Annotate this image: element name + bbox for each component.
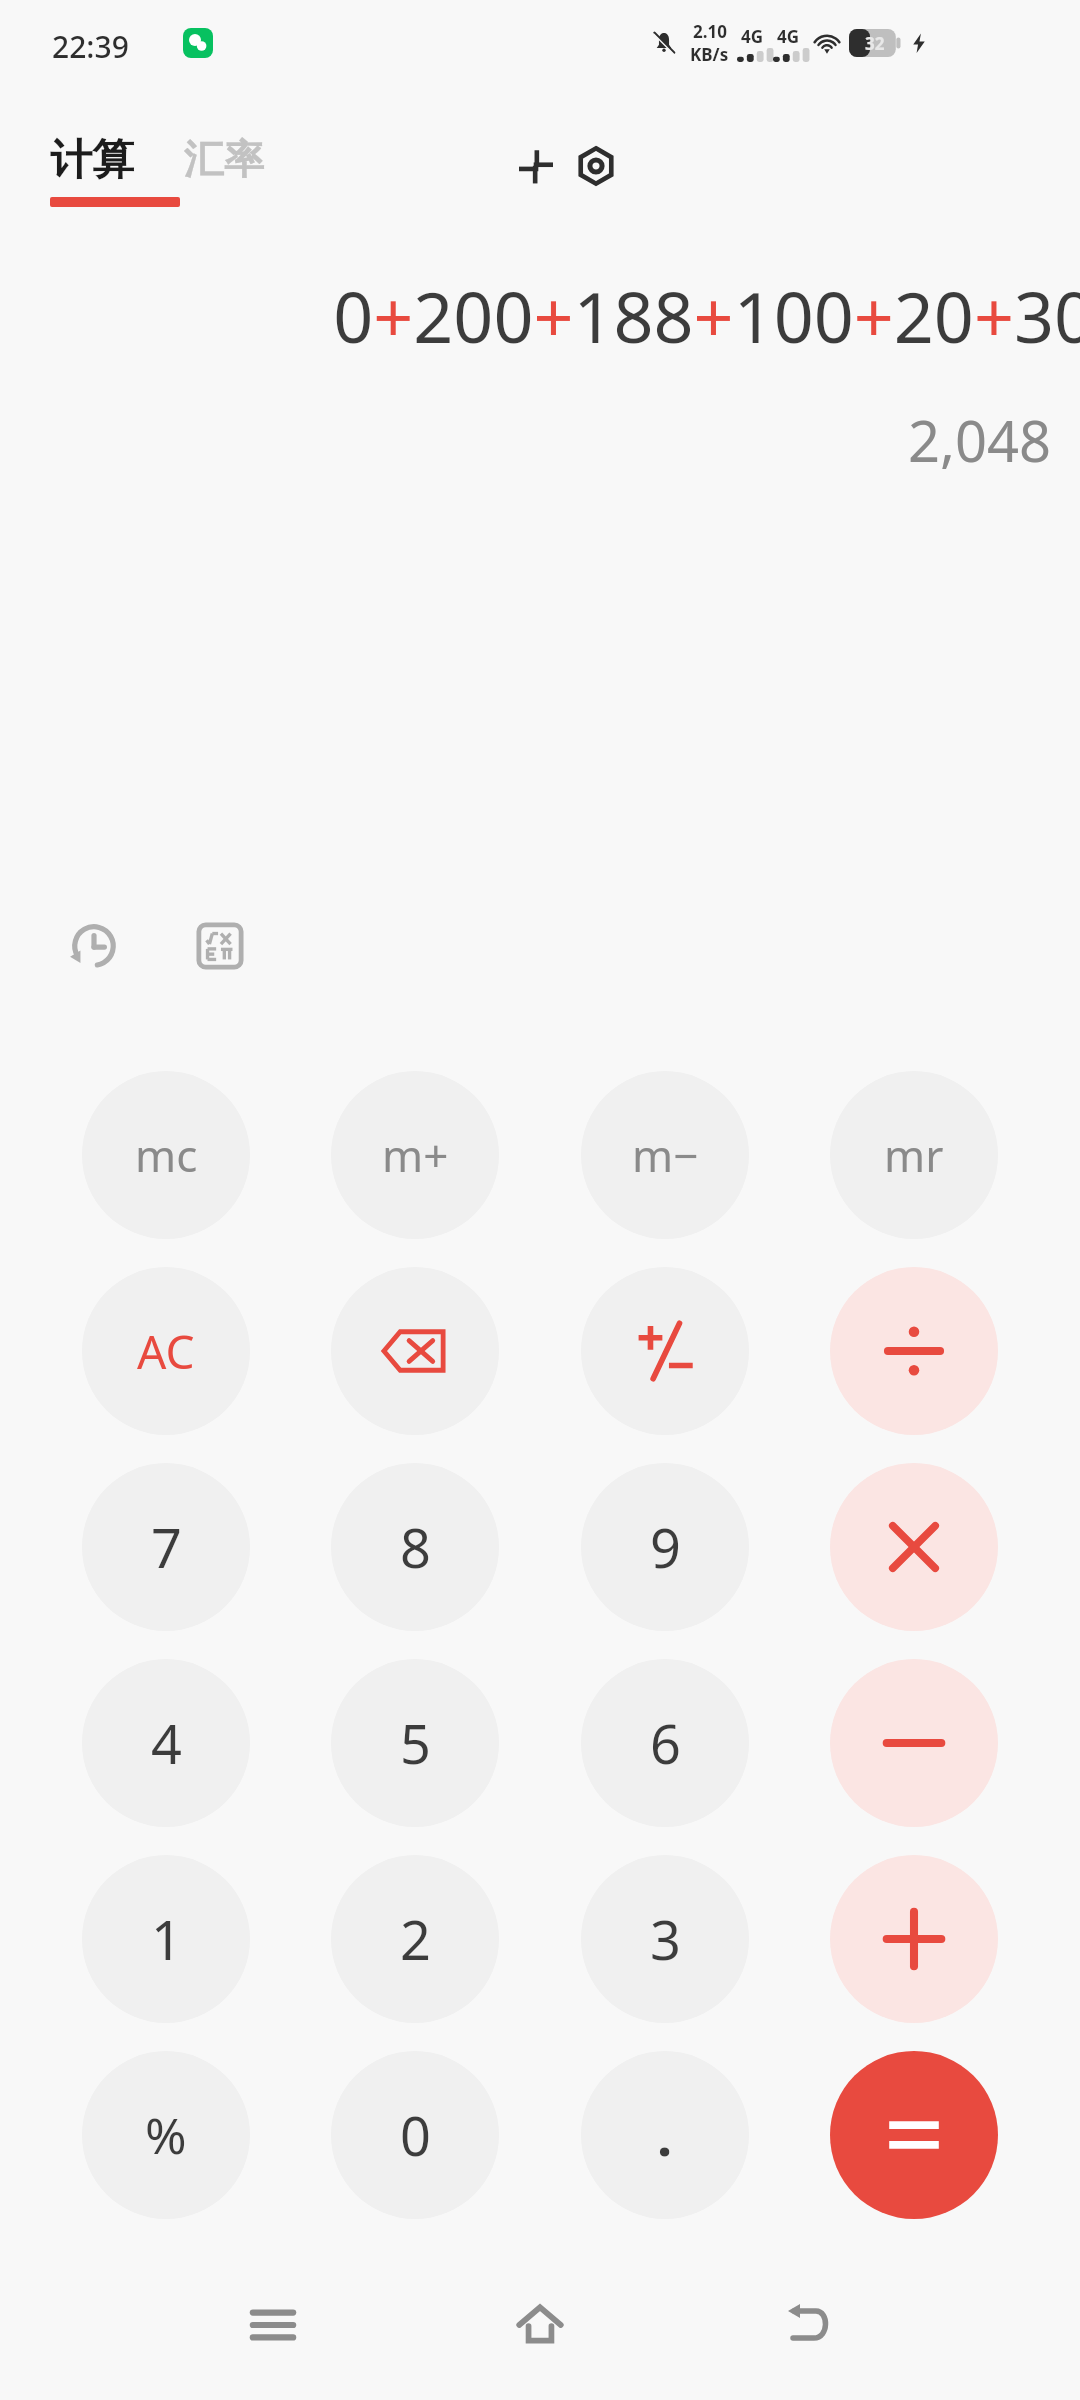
staticText: 5	[400, 1706, 431, 1780]
button[interactable]: Home	[485, 2270, 595, 2380]
staticText: mr	[884, 1125, 944, 1185]
button[interactable]: Backspace	[331, 1267, 499, 1435]
staticText: 8	[400, 1510, 431, 1584]
button[interactable]: 0	[331, 2051, 499, 2219]
button[interactable]: Scientific mode	[508, 138, 564, 194]
button[interactable]: Divide	[830, 1267, 998, 1435]
button[interactable]: 6	[581, 1659, 749, 1827]
button[interactable]: 5	[331, 1659, 499, 1827]
staticText: 4G	[777, 25, 800, 48]
button[interactable]: %	[82, 2051, 250, 2219]
button[interactable]: Equals	[830, 2051, 998, 2219]
button[interactable]: mr	[830, 1071, 998, 1239]
button[interactable]: Multiply	[830, 1463, 998, 1631]
staticText: mc	[135, 1125, 198, 1185]
staticText: 0+200+188+100+20+30	[333, 268, 1080, 363]
staticText: 4G	[741, 25, 764, 48]
staticText: 计算	[50, 134, 134, 187]
staticText: 9	[650, 1510, 681, 1584]
button[interactable]: 2	[331, 1855, 499, 2023]
button[interactable]: Recents	[218, 2270, 328, 2380]
staticText: m+	[382, 1125, 449, 1185]
button[interactable]: AC	[82, 1267, 250, 1435]
staticText: 0	[400, 2098, 431, 2172]
button[interactable]: 汇率	[178, 134, 270, 184]
staticText: 6	[650, 1706, 681, 1780]
button[interactable]: m+	[331, 1071, 499, 1239]
staticText: 4	[151, 1706, 182, 1780]
button[interactable]: mc	[82, 1071, 250, 1239]
staticText: .	[657, 2098, 673, 2172]
button[interactable]: Plus minus	[581, 1267, 749, 1435]
staticText: 7	[151, 1510, 182, 1584]
button[interactable]: 7	[82, 1463, 250, 1631]
staticText: 2.10	[693, 20, 727, 43]
staticText: AC	[137, 1320, 195, 1383]
button[interactable]: 1	[82, 1855, 250, 2023]
button[interactable]: Back	[753, 2270, 863, 2380]
staticText: 汇率	[184, 134, 264, 184]
staticText: 3	[650, 1902, 681, 1976]
staticText: 2	[400, 1902, 431, 1976]
button[interactable]: Settings	[568, 138, 624, 194]
staticText: 2,048	[908, 402, 1052, 478]
staticText: %	[145, 2101, 187, 2169]
staticText: m−	[632, 1125, 699, 1185]
button[interactable]: History	[48, 900, 140, 992]
button[interactable]: 3	[581, 1855, 749, 2023]
button[interactable]: 计算	[46, 134, 184, 207]
button[interactable]: 8	[331, 1463, 499, 1631]
button[interactable]: 9	[581, 1463, 749, 1631]
staticText: 22:39	[52, 26, 129, 67]
button[interactable]: .	[581, 2051, 749, 2219]
button[interactable]: 4	[82, 1659, 250, 1827]
staticText: 32	[865, 32, 885, 55]
button[interactable]: Subtract	[830, 1659, 998, 1827]
button[interactable]: Add	[830, 1855, 998, 2023]
staticText: 1	[151, 1902, 182, 1976]
button[interactable]: m−	[581, 1071, 749, 1239]
button[interactable]: Scientific calculator	[174, 900, 266, 992]
staticText: KB/s	[690, 43, 729, 66]
